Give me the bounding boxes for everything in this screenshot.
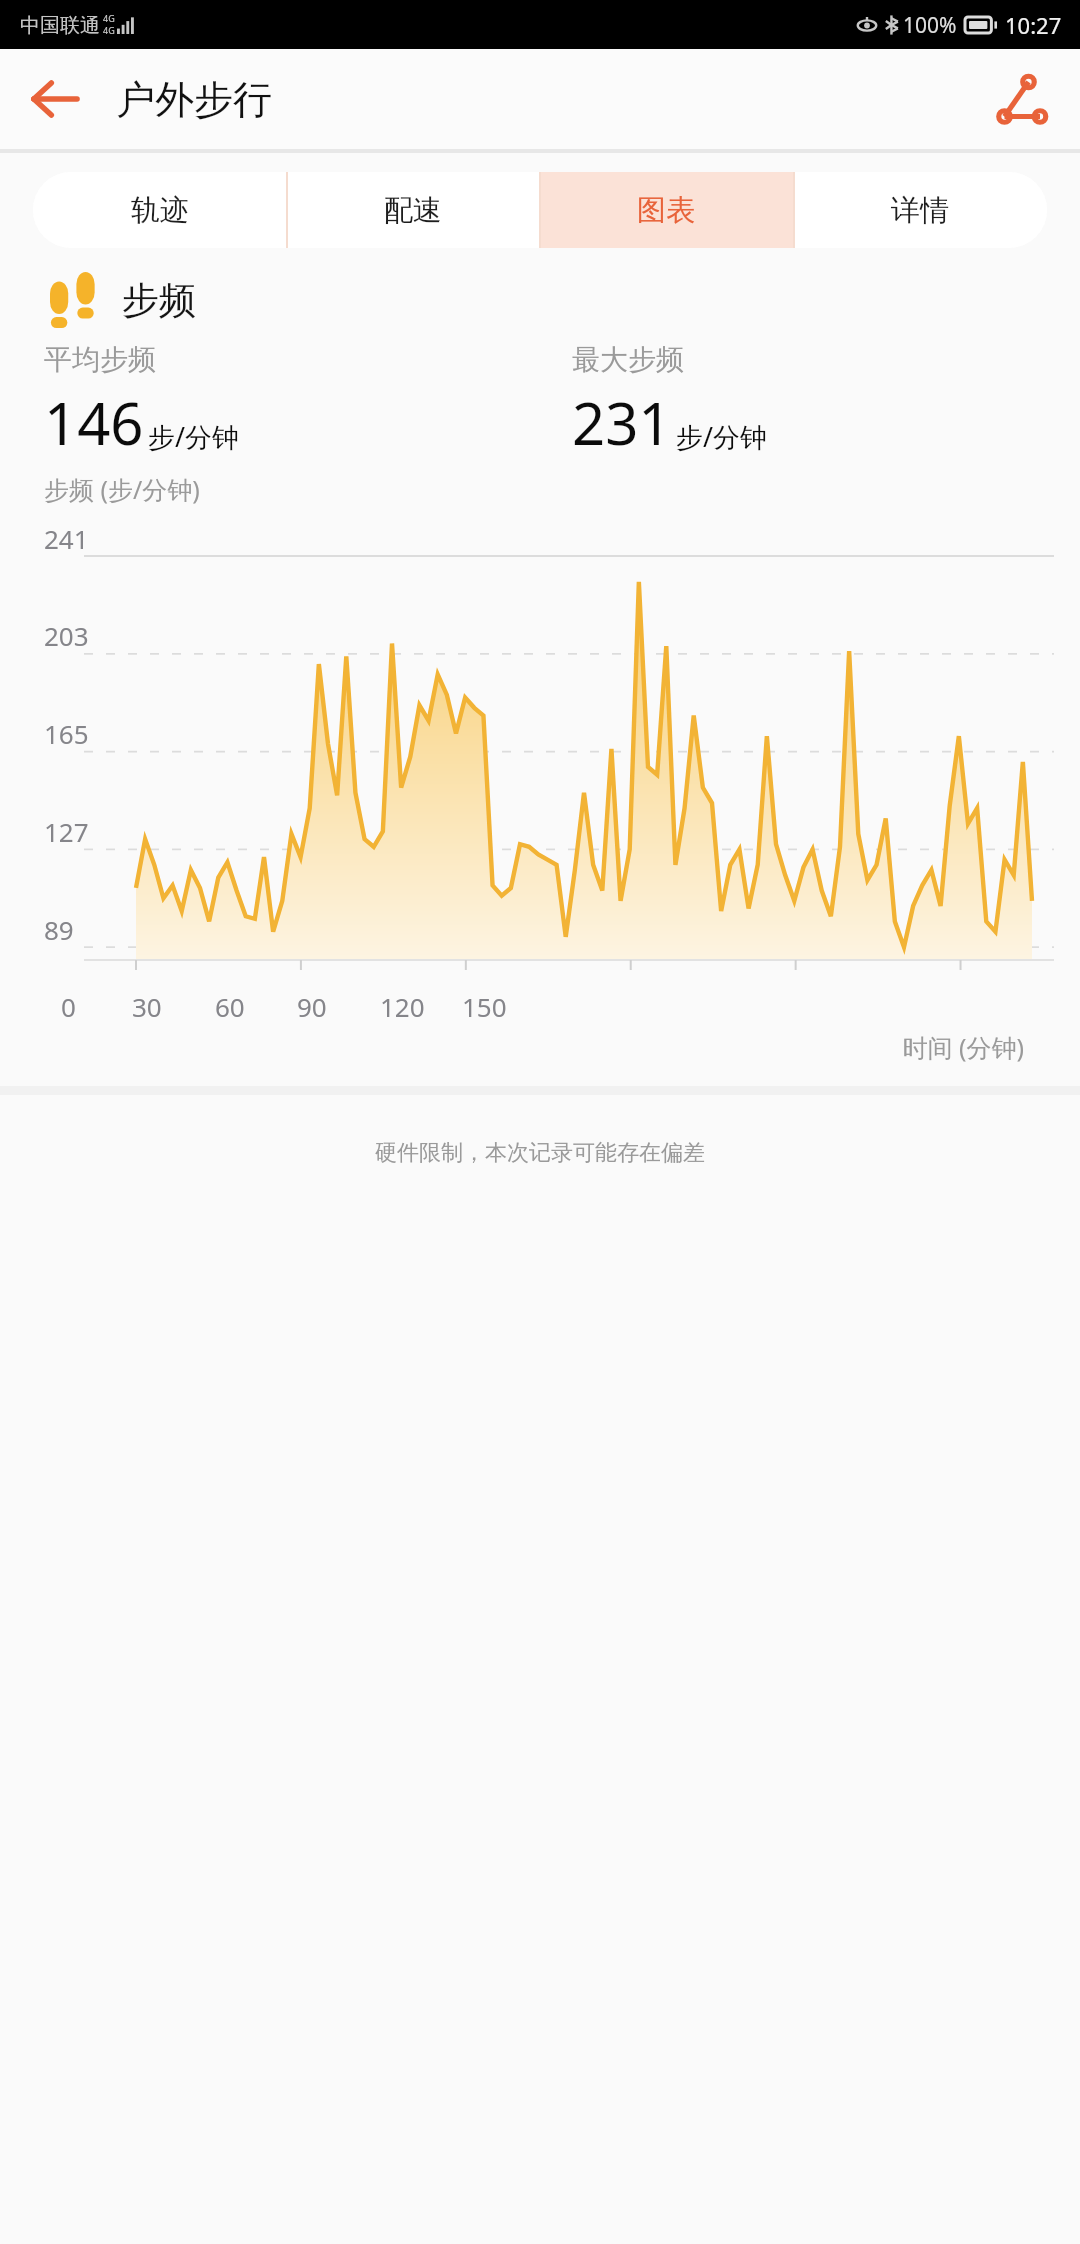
staticText: 步/分钟 [676, 418, 768, 455]
staticText: 0 [61, 989, 76, 1024]
staticText: 146 [44, 383, 144, 462]
staticText: 150 [462, 989, 507, 1024]
staticText: 配速 [384, 192, 442, 229]
staticText: 120 [380, 989, 425, 1024]
staticText: 60 [215, 989, 245, 1024]
staticText: 中国联通 [20, 13, 100, 38]
staticText: 最大步频 [572, 342, 684, 377]
staticText: 步频 (步/分钟) [44, 472, 200, 506]
staticText: 时间 (分钟) [0, 1030, 1024, 1064]
button[interactable]: 详情 [793, 172, 1047, 248]
staticText: 127 [44, 814, 89, 849]
staticText: 89 [44, 912, 74, 947]
staticText: 平均步频 [44, 342, 156, 377]
staticText: 100% [903, 11, 957, 40]
staticText: 10:27 [1005, 10, 1062, 40]
staticText: 步/分钟 [148, 418, 240, 455]
staticText: 90 [297, 989, 327, 1024]
staticText: 户外步行 [116, 75, 272, 124]
staticText: 241 [44, 521, 89, 556]
button[interactable]: Back [22, 66, 88, 132]
staticText: 硬件限制，本次记录可能存在偏差 [0, 1139, 1080, 1167]
staticText: 30 [132, 989, 162, 1024]
staticText: 详情 [891, 192, 949, 229]
staticText: 203 [44, 618, 89, 653]
button[interactable]: 轨迹 [33, 172, 286, 248]
staticText: 231 [572, 383, 672, 462]
button[interactable]: 图表 [539, 172, 793, 248]
staticText: 4G [103, 12, 115, 24]
staticText: 165 [44, 716, 89, 751]
button[interactable]: Share [986, 63, 1058, 135]
staticText: 步频 [122, 277, 196, 324]
staticText: 图表 [637, 192, 695, 229]
staticText: 轨迹 [131, 192, 189, 229]
staticText: 4G [103, 24, 115, 36]
button[interactable]: 配速 [286, 172, 539, 248]
